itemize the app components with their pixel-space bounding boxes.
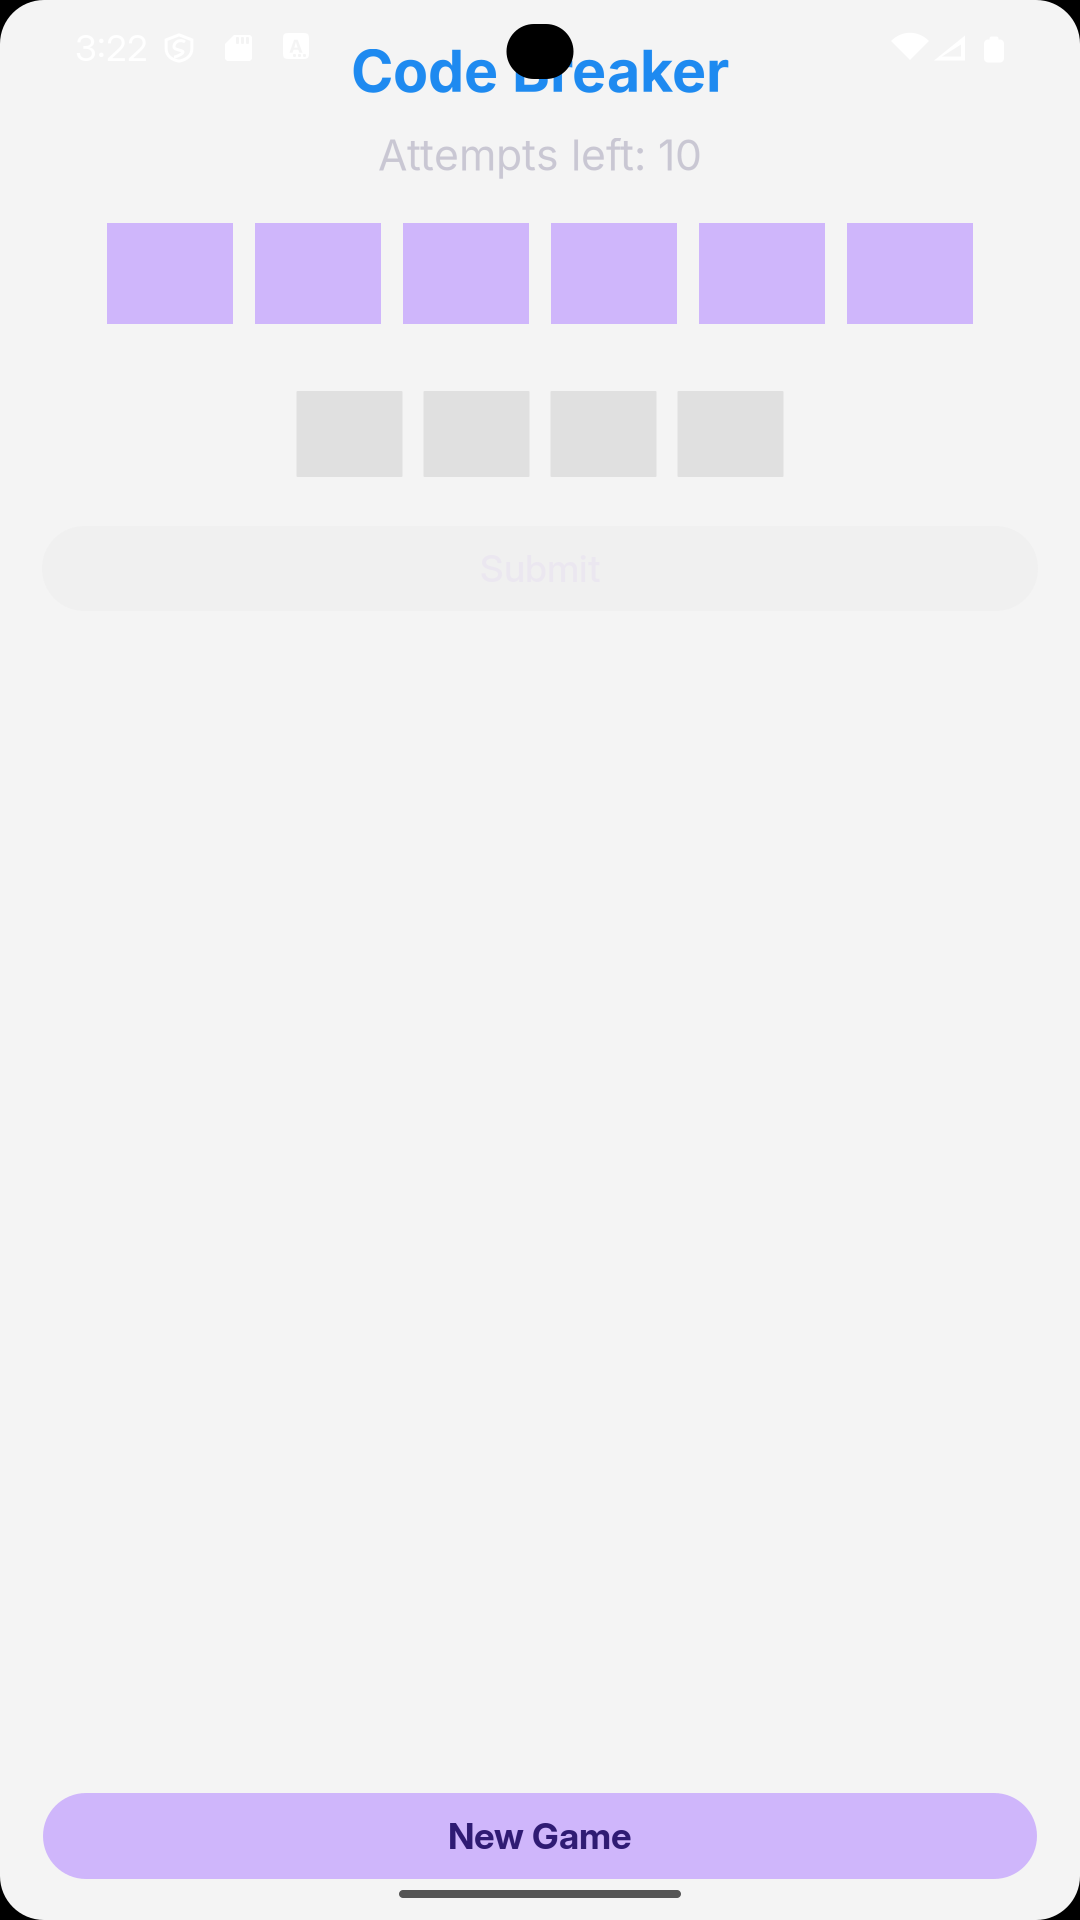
staticText: A (289, 35, 303, 57)
button[interactable]: New Game (43, 1793, 1037, 1879)
staticText: New Game (448, 1814, 632, 1858)
staticText: Submit (480, 546, 600, 591)
staticText: Attempts left: 10 (378, 129, 702, 181)
staticText: Code Breaker (351, 36, 729, 106)
staticText: 3:22 (75, 26, 148, 70)
